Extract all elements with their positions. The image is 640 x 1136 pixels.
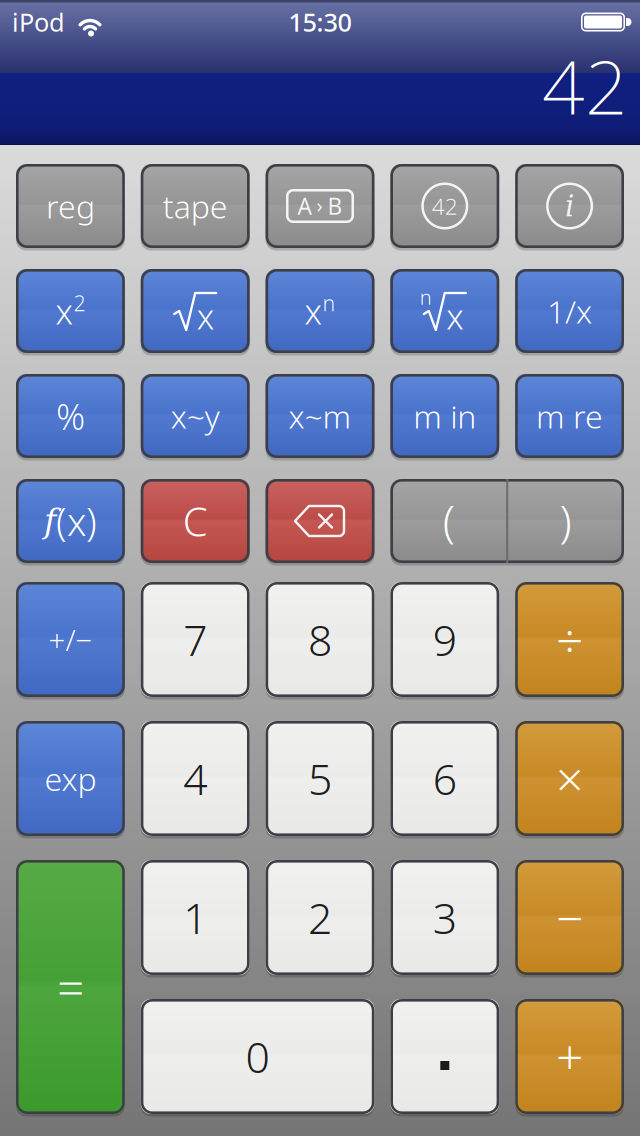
staticText: (	[443, 492, 455, 550]
button[interactable]: 9	[390, 582, 499, 697]
button[interactable]: x	[266, 269, 374, 353]
button[interactable]: +	[515, 999, 624, 1114]
staticText: )	[560, 492, 572, 550]
button[interactable]: x	[141, 269, 250, 353]
staticText: A	[297, 191, 311, 221]
staticText: 42	[542, 36, 628, 135]
button[interactable]: )	[507, 479, 624, 563]
staticText: 2	[308, 889, 332, 946]
button[interactable]: 2	[266, 860, 374, 975]
button[interactable]: f	[16, 479, 125, 563]
button[interactable]: 6	[390, 721, 499, 836]
button[interactable]: m in	[390, 374, 499, 458]
button[interactable]: Backspace	[266, 479, 374, 563]
staticText: +/−	[48, 620, 92, 659]
staticText: x	[446, 293, 463, 339]
button[interactable]: Info	[515, 164, 624, 248]
staticText: 6	[433, 750, 457, 807]
button[interactable]: 1/x	[515, 269, 624, 353]
staticText: n	[420, 284, 432, 310]
staticText: i	[565, 189, 574, 223]
button[interactable]: 3	[390, 860, 499, 975]
staticText: =	[57, 955, 84, 1019]
staticText: tape	[163, 185, 228, 227]
staticText: m in	[413, 395, 476, 437]
staticText: (x)	[56, 495, 97, 547]
staticText: x~m	[288, 395, 351, 437]
staticText: C	[183, 494, 208, 547]
staticText: x	[197, 293, 214, 339]
staticText: n	[322, 289, 335, 317]
button[interactable]: (	[390, 479, 507, 563]
staticText: 1/x	[547, 290, 592, 332]
button[interactable]: Answer	[390, 164, 499, 248]
button[interactable]: m re	[515, 374, 624, 458]
staticText: 8	[308, 611, 332, 668]
button[interactable]: =	[16, 860, 125, 1114]
staticText: 2	[73, 289, 85, 317]
button[interactable]: x~m	[266, 374, 374, 458]
staticText: ›	[316, 192, 322, 218]
button[interactable]: 7	[141, 582, 250, 697]
staticText: x~y	[171, 395, 220, 437]
button[interactable]: reg	[16, 164, 125, 248]
staticText: 5	[308, 750, 332, 807]
button[interactable]: −	[515, 860, 624, 975]
button[interactable]: x~y	[141, 374, 250, 458]
button[interactable]: C	[141, 479, 250, 563]
button[interactable]: 0	[141, 999, 374, 1114]
staticText: exp	[44, 757, 96, 800]
button[interactable]: 4	[141, 721, 250, 836]
staticText: x	[55, 288, 72, 334]
button[interactable]: Decimal point	[390, 999, 499, 1114]
staticText: 15:30	[288, 5, 351, 39]
button[interactable]: Convert A to B	[266, 164, 374, 248]
button[interactable]: ÷	[515, 582, 624, 697]
staticText: m re	[536, 395, 603, 437]
staticText: 9	[433, 611, 457, 668]
button[interactable]: x	[16, 269, 125, 353]
button[interactable]: 5	[266, 721, 374, 836]
button[interactable]: n	[390, 269, 499, 353]
staticText: 0	[246, 1028, 270, 1085]
button[interactable]: tape	[141, 164, 250, 248]
staticText: iPod	[12, 5, 65, 39]
staticText: reg	[46, 185, 95, 227]
staticText: %	[56, 392, 85, 440]
staticText: 7	[183, 611, 207, 668]
staticText: 42	[432, 191, 458, 221]
button[interactable]: %	[16, 374, 125, 458]
staticText: −	[556, 886, 583, 949]
button[interactable]: 1	[141, 860, 250, 975]
staticText: 3	[433, 889, 457, 946]
staticText: 4	[183, 750, 207, 807]
staticText: f	[44, 502, 56, 540]
button[interactable]: ×	[515, 721, 624, 836]
staticText: x	[304, 288, 321, 334]
staticText: B	[327, 191, 342, 221]
staticText: 1	[183, 889, 207, 946]
button[interactable]: 8	[266, 582, 374, 697]
staticText: ×	[556, 747, 583, 810]
staticText: ÷	[556, 608, 583, 671]
button[interactable]: exp	[16, 721, 125, 836]
staticText: +	[556, 1025, 583, 1088]
button[interactable]: +/−	[16, 582, 125, 697]
